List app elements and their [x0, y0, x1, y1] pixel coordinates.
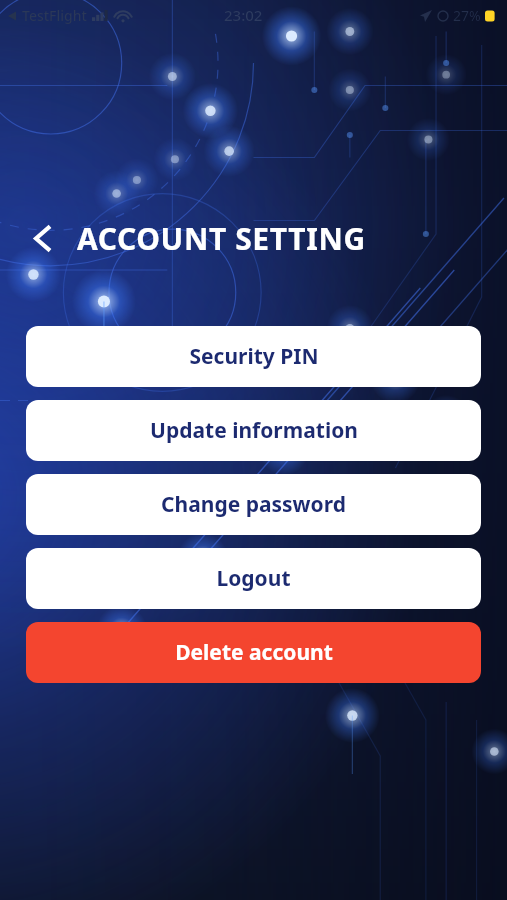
staticText: Logout — [216, 564, 291, 593]
button[interactable]: Security PIN — [26, 326, 481, 387]
staticText: TestFlight — [22, 6, 87, 25]
button[interactable]: Delete account — [26, 622, 481, 683]
staticText: Delete account — [175, 638, 333, 667]
button[interactable]: Update information — [26, 400, 481, 461]
staticText: 27% — [453, 6, 481, 25]
button[interactable]: Back — [20, 216, 64, 260]
button[interactable]: Change password — [26, 474, 481, 535]
staticText: ACCOUNT SETTING — [77, 218, 366, 259]
button[interactable]: Logout — [26, 548, 481, 609]
staticText: Security PIN — [189, 342, 319, 371]
staticText: 23:02 — [224, 5, 263, 25]
staticText: Update information — [150, 416, 358, 445]
staticText: Change password — [161, 490, 346, 519]
